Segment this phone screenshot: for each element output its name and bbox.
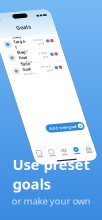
- staticText: weekends: [16, 63, 28, 70]
- staticText: goal: [40, 61, 46, 64]
- staticText: Add new goal: [24, 120, 51, 125]
- button[interactable]: Tab 3: [25, 142, 37, 152]
- staticText: Daily Target: [16, 23, 28, 39]
- staticText: 8,000: [37, 43, 46, 47]
- staticText: every day: [16, 39, 27, 43]
- staticText: goal: [40, 47, 46, 50]
- button[interactable]: Add new goal: [21, 118, 59, 127]
- staticText: weekdays: [16, 51, 28, 54]
- button[interactable]: Time Goal: [3, 54, 59, 68]
- staticText: Step Goal: [16, 39, 25, 50]
- staticText: goal: [40, 33, 46, 36]
- button[interactable]: Tab 4: [37, 142, 49, 152]
- button[interactable]: Daily Target: [3, 26, 59, 40]
- staticText: Goals: [23, 13, 38, 20]
- staticText: 30 min: [35, 57, 46, 61]
- staticText: or make your own: [11, 195, 90, 207]
- button[interactable]: Step Goal: [3, 40, 59, 54]
- button[interactable]: Tab 5: [50, 142, 62, 152]
- staticText: +: [54, 119, 57, 126]
- staticText: Time Goal: [16, 52, 25, 62]
- staticText: Use preset goals: [12, 155, 89, 194]
